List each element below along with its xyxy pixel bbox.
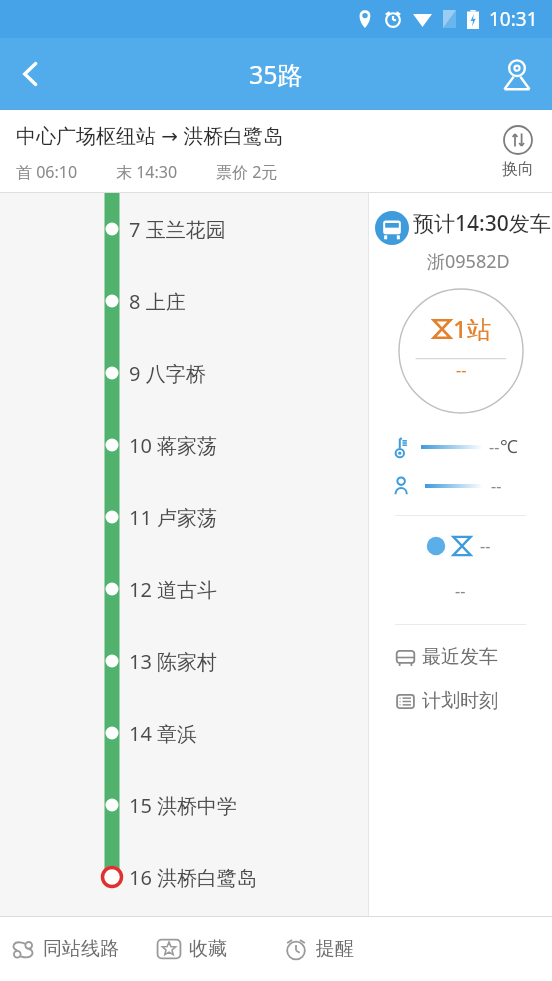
staticText: 提醒 [316, 937, 354, 961]
button[interactable]: 12 道古斗 [0, 553, 368, 625]
staticText: 11 卢家荡 [129, 504, 218, 531]
button[interactable]: 换向 [498, 121, 538, 183]
staticText: -- [480, 535, 491, 557]
staticText: 16 洪桥白鹭岛 [129, 864, 258, 891]
staticText: 计划时刻 [422, 689, 498, 713]
button[interactable]: 收藏 [128, 917, 255, 981]
button[interactable]: 8 上庄 [0, 265, 368, 337]
staticText: -- [456, 359, 467, 381]
button[interactable]: 16 洪桥白鹭岛 [0, 841, 368, 913]
button[interactable]: 10 蒋家荡 [0, 409, 368, 481]
staticText: 首 06:10 [16, 161, 78, 183]
staticText: 中心广场枢纽站 → 洪桥白鹭岛 [16, 122, 284, 149]
staticText: -- [489, 436, 500, 458]
button[interactable]: 最近发车 [369, 639, 552, 675]
button[interactable]: Map [482, 39, 552, 109]
staticText: 换向 [502, 159, 534, 179]
staticText: 预计14:30发车 [413, 209, 551, 238]
button[interactable]: 9 八字桥 [0, 337, 368, 409]
button[interactable]: 计划时刻 [369, 683, 552, 719]
staticText: 末 14:30 [116, 161, 178, 183]
staticText: 10:31 [489, 6, 538, 32]
button[interactable]: 11 卢家荡 [0, 481, 368, 553]
button[interactable]: Back [0, 43, 62, 105]
staticText: -- [455, 580, 466, 602]
button[interactable]: 15 洪桥中学 [0, 769, 368, 841]
staticText: 8 上庄 [129, 288, 186, 315]
staticText: 浙09582D [427, 249, 510, 274]
staticText: ℃ [500, 434, 518, 459]
staticText: 35路 [249, 57, 303, 91]
button[interactable]: 7 玉兰花园 [0, 193, 368, 265]
staticText: 15 洪桥中学 [129, 792, 238, 819]
staticText: 最近发车 [422, 645, 498, 669]
staticText: 1站 [453, 312, 491, 345]
staticText: 同站线路 [43, 937, 119, 961]
button[interactable]: 13 陈家村 [0, 625, 368, 697]
staticText: 13 陈家村 [129, 648, 218, 675]
staticText: 票价 2元 [216, 161, 278, 183]
staticText: 7 玉兰花园 [129, 216, 226, 243]
button[interactable]: 同站线路 [0, 917, 128, 981]
staticText: 12 道古斗 [129, 576, 218, 603]
button[interactable]: 14 章浜 [0, 697, 368, 769]
staticText: 10 蒋家荡 [129, 432, 218, 459]
button[interactable]: 1站 [398, 288, 524, 414]
staticText: -- [491, 475, 502, 497]
button[interactable]: 提醒 [255, 917, 382, 981]
staticText: 收藏 [189, 937, 227, 961]
staticText: 9 八字桥 [129, 360, 206, 387]
staticText: 14 章浜 [129, 720, 198, 747]
